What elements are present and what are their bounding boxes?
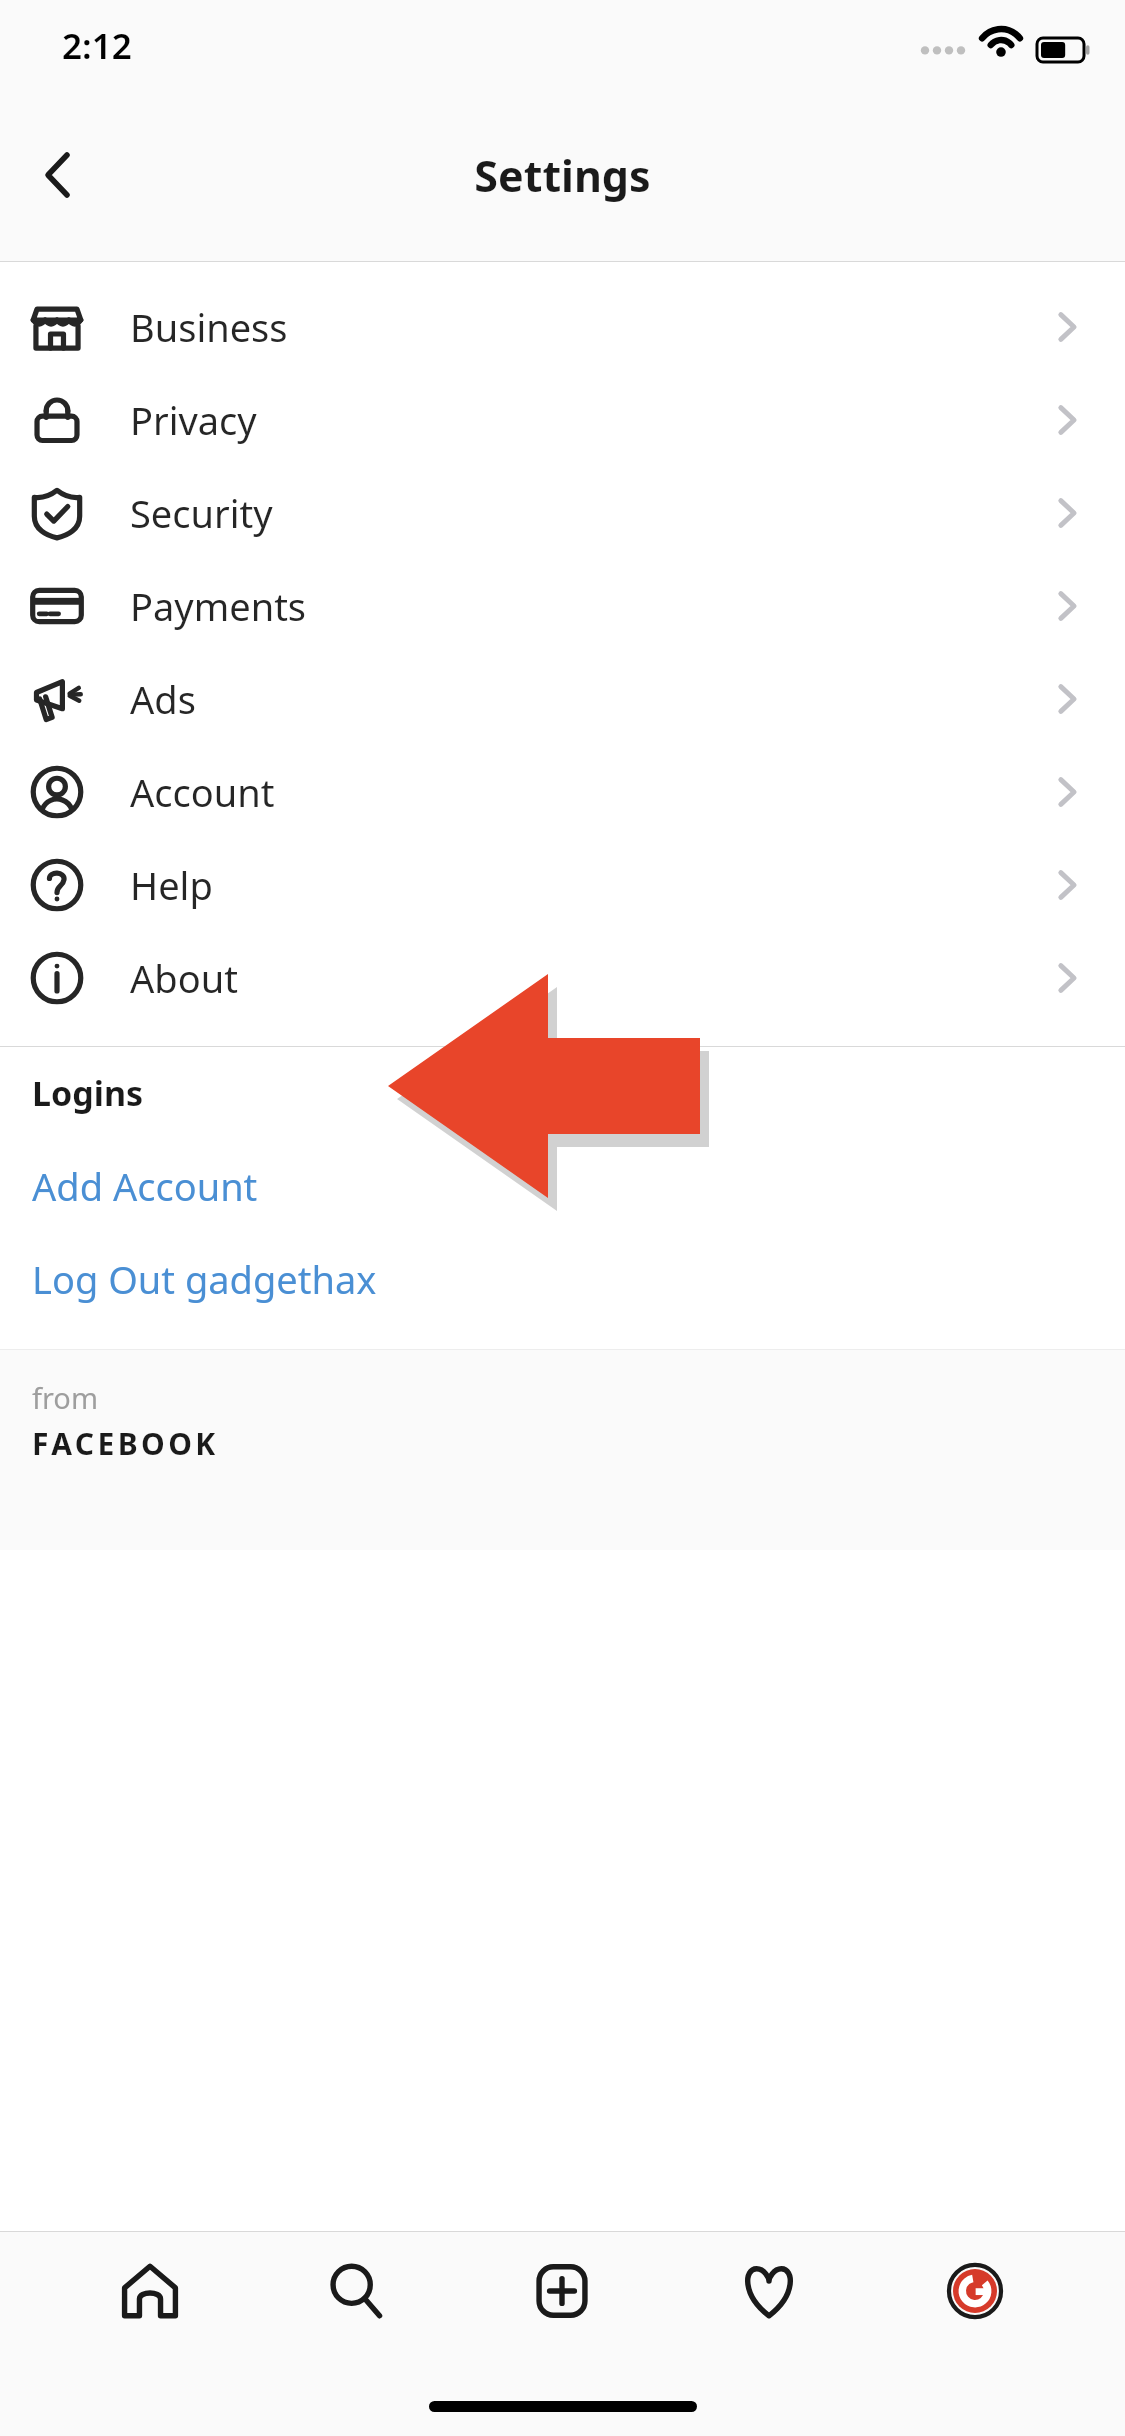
staticText: Log Out gadgethax	[32, 1253, 377, 1305]
button[interactable]: Security	[0, 466, 1125, 559]
button[interactable]: About	[0, 931, 1125, 1024]
button[interactable]: Add Account	[0, 1139, 1125, 1232]
button[interactable]: Back	[12, 129, 104, 221]
staticText: Privacy	[130, 394, 257, 446]
staticText: About	[130, 952, 238, 1004]
staticText: FACEBOOK	[32, 1423, 219, 1464]
button[interactable]: Search	[300, 2235, 412, 2347]
staticText: Add Account	[32, 1160, 258, 1212]
button[interactable]: Ads	[0, 652, 1125, 745]
button[interactable]: Profile	[919, 2235, 1031, 2347]
staticText: Security	[130, 487, 273, 539]
staticText: 2:12	[62, 22, 132, 70]
button[interactable]: New Post	[506, 2235, 618, 2347]
button[interactable]: Activity	[713, 2235, 825, 2347]
button[interactable]: Business	[0, 280, 1125, 373]
staticText: Help	[130, 859, 213, 911]
staticText: Ads	[130, 673, 196, 725]
staticText: Payments	[130, 580, 307, 632]
button[interactable]: Account	[0, 745, 1125, 838]
button[interactable]: Help	[0, 838, 1125, 931]
staticText: Account	[130, 766, 275, 818]
staticText: Settings	[474, 146, 651, 205]
staticText: from	[32, 1378, 99, 1417]
staticText: Business	[130, 301, 288, 353]
staticText: Logins	[32, 1070, 144, 1116]
button[interactable]: Log Out gadgethax	[0, 1232, 1125, 1325]
button[interactable]: Payments	[0, 559, 1125, 652]
button[interactable]: Privacy	[0, 373, 1125, 466]
button[interactable]: Home	[94, 2235, 206, 2347]
